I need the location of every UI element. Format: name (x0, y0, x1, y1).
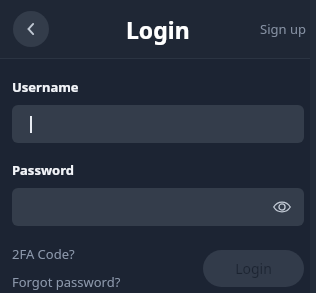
staticText: Login (235, 259, 272, 278)
staticText: Forgot password? (12, 273, 121, 291)
staticText: Username (12, 78, 79, 96)
button[interactable]: Forgot password? (12, 271, 121, 293)
button[interactable]: 2FA Code? (12, 243, 75, 265)
staticText: Password (12, 161, 74, 179)
button[interactable]: Sign up (250, 14, 316, 44)
button[interactable]: Back (13, 11, 49, 47)
staticText: Login (126, 14, 190, 45)
button[interactable]: Login (203, 250, 304, 287)
staticText: Sign up (260, 20, 306, 38)
button[interactable] (12, 105, 304, 143)
staticText: 2FA Code? (12, 245, 75, 263)
button[interactable]: Show password (268, 193, 296, 221)
button[interactable]: Show password (12, 188, 304, 226)
